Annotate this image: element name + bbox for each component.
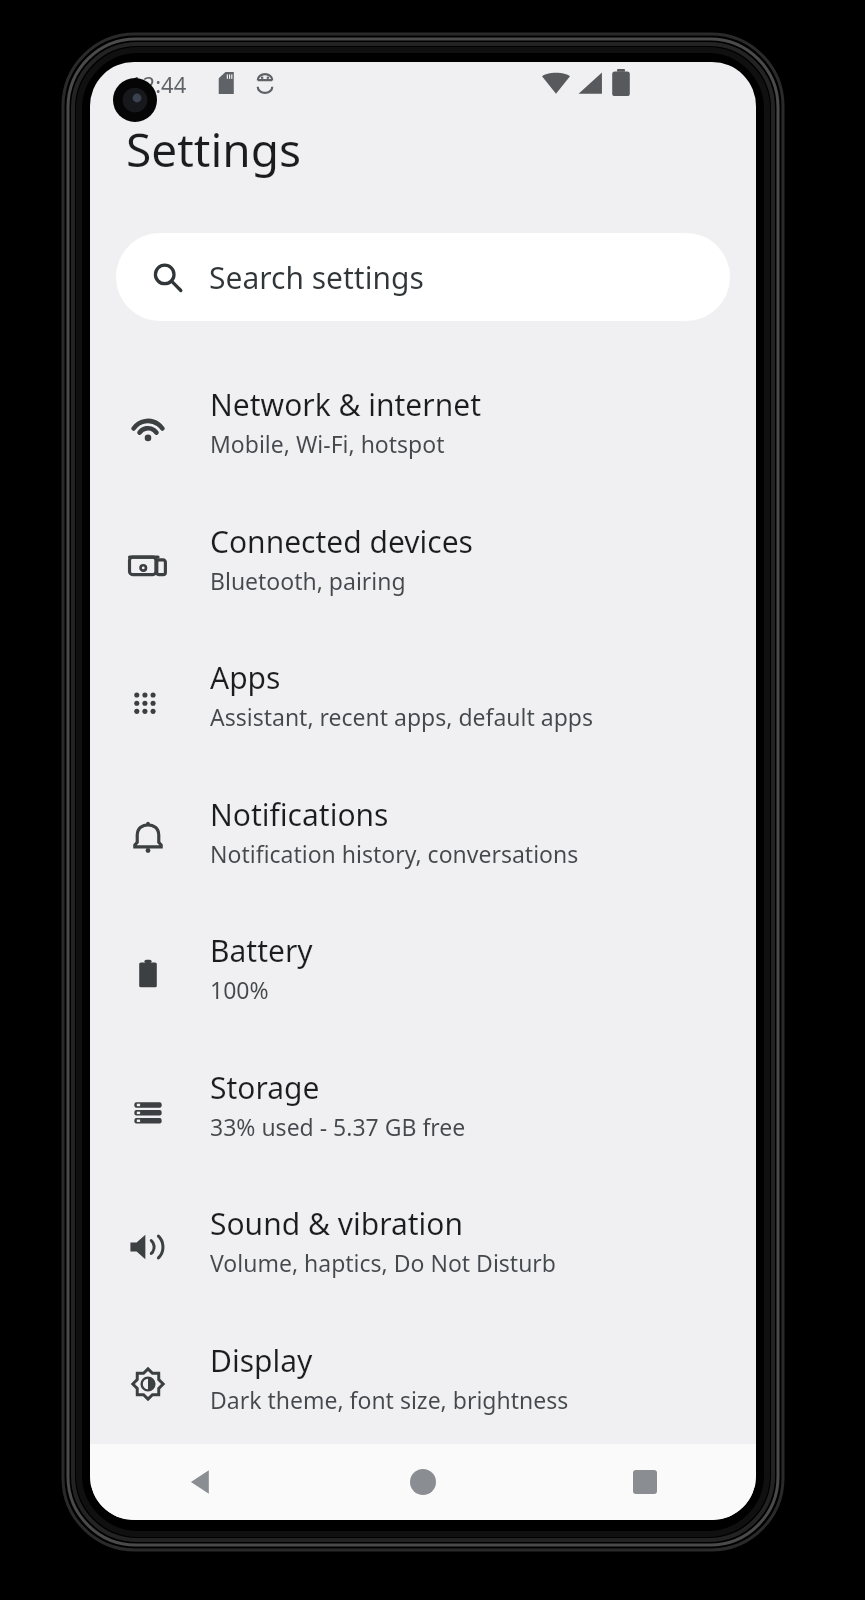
staticText: Battery	[210, 930, 313, 971]
button[interactable]: Search settings	[116, 233, 730, 321]
staticText: Notification history, conversations	[210, 838, 579, 869]
staticText: 33% used - 5.37 GB free	[210, 1111, 466, 1142]
staticText: Search settings	[209, 257, 424, 298]
staticText: Settings	[126, 118, 302, 181]
button[interactable]: Back	[90, 1444, 312, 1520]
staticText: 12:44	[130, 69, 187, 99]
staticText: Network & internet	[210, 384, 481, 425]
button[interactable]: Display	[90, 1318, 756, 1455]
button[interactable]: Battery	[90, 908, 756, 1045]
staticText: Sound & vibration	[210, 1203, 464, 1244]
button[interactable]: Wallpaper & style	[90, 1454, 756, 1520]
staticText: Apps	[210, 657, 281, 698]
staticText: Wallpaper & style	[210, 1476, 456, 1517]
staticText: Bluetooth, pairing	[210, 565, 406, 596]
button[interactable]: Storage	[90, 1045, 756, 1182]
staticText: Connected devices	[210, 521, 473, 562]
staticText: Mobile, Wi-Fi, hotspot	[210, 428, 445, 459]
button[interactable]: Apps	[90, 635, 756, 772]
button[interactable]: Home	[312, 1444, 534, 1520]
staticText: 100%	[210, 974, 269, 1005]
staticText: Dark theme, font size, brightness	[210, 1384, 569, 1415]
staticText: Assistant, recent apps, default apps	[210, 701, 593, 732]
staticText: Display	[210, 1340, 313, 1381]
button[interactable]: Notifications	[90, 772, 756, 909]
button[interactable]: Connected devices	[90, 499, 756, 636]
staticText: Storage	[210, 1067, 320, 1108]
button[interactable]: Recent apps	[534, 1444, 756, 1520]
button[interactable]: Sound & vibration	[90, 1181, 756, 1318]
staticText: Volume, haptics, Do Not Disturb	[210, 1247, 556, 1278]
staticText: Notifications	[210, 794, 389, 835]
button[interactable]: Network & internet	[90, 362, 756, 499]
